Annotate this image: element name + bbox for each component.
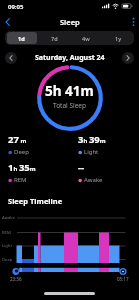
staticText: 1y bbox=[115, 35, 122, 42]
button[interactable] bbox=[128, 16, 139, 28]
staticText: 23:36 bbox=[10, 276, 22, 282]
staticText: Deep bbox=[2, 257, 13, 263]
staticText: REM bbox=[14, 176, 27, 184]
button[interactable]: 1y bbox=[102, 31, 134, 45]
staticText: 05:17 bbox=[117, 276, 129, 282]
staticText: 4w bbox=[82, 35, 90, 42]
button[interactable] bbox=[5, 52, 17, 64]
staticText: 3h 39m bbox=[78, 133, 106, 146]
staticText: 27 m bbox=[8, 133, 27, 146]
staticText: Sleep Timeline bbox=[8, 196, 63, 206]
staticText: Light bbox=[84, 148, 99, 156]
button[interactable] bbox=[2, 16, 14, 28]
button[interactable]: 7d bbox=[38, 31, 70, 45]
staticText: 09:05 bbox=[8, 3, 24, 11]
staticText: 1h 35m bbox=[8, 161, 36, 174]
staticText: 1d bbox=[18, 35, 25, 42]
staticText: Saturday, August 24 bbox=[35, 53, 105, 63]
staticText: Awake bbox=[84, 176, 103, 184]
staticText: 5h 41m bbox=[45, 82, 94, 100]
staticText: Total Sleep bbox=[53, 101, 87, 110]
staticText: Deep bbox=[14, 148, 29, 156]
staticText: REM bbox=[2, 230, 11, 236]
button[interactable]: 4w bbox=[70, 31, 102, 45]
button[interactable] bbox=[122, 52, 134, 64]
staticText: -- bbox=[78, 161, 85, 174]
staticText: Light bbox=[2, 243, 12, 249]
staticText: 7d bbox=[51, 35, 58, 42]
staticText: Sleep bbox=[60, 17, 80, 27]
button[interactable]: 1d bbox=[5, 31, 38, 45]
staticText: Awake bbox=[2, 215, 15, 221]
